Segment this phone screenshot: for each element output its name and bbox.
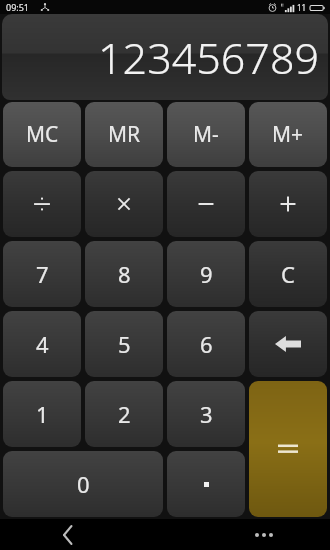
- staticText: 6: [200, 329, 213, 359]
- staticText: 8: [118, 259, 131, 289]
- staticText: MR: [108, 120, 141, 149]
- staticText: M-: [193, 120, 219, 149]
- button[interactable]: M+: [249, 102, 327, 167]
- staticText: 1: [36, 399, 49, 429]
- button[interactable]: MR: [85, 102, 163, 167]
- button[interactable]: Minus: [167, 171, 245, 237]
- button[interactable]: 7: [3, 241, 81, 307]
- button[interactable]: Decimal point: [167, 451, 245, 517]
- staticText: 11: [297, 2, 307, 13]
- button[interactable]: 3: [167, 381, 245, 447]
- button[interactable]: Equals: [249, 381, 327, 517]
- button[interactable]: Back: [48, 519, 88, 550]
- staticText: 123456789: [98, 28, 319, 87]
- button[interactable]: 2: [85, 381, 163, 447]
- staticText: 5: [118, 329, 131, 359]
- button[interactable]: Multiply: [85, 171, 163, 237]
- button[interactable]: 6: [167, 311, 245, 377]
- button[interactable]: 8: [85, 241, 163, 307]
- button[interactable]: Divide: [3, 171, 81, 237]
- staticText: 09:51: [6, 1, 30, 13]
- staticText: 0: [77, 469, 90, 499]
- button[interactable]: 5: [85, 311, 163, 377]
- staticText: 2: [118, 399, 131, 429]
- button[interactable]: Backspace: [249, 311, 327, 377]
- button[interactable]: 0: [3, 451, 163, 517]
- button[interactable]: MC: [3, 102, 81, 167]
- staticText: 7: [36, 259, 49, 289]
- staticText: M+: [272, 120, 304, 149]
- button[interactable]: Plus: [249, 171, 327, 237]
- button[interactable]: 4: [3, 311, 81, 377]
- button[interactable]: M-: [167, 102, 245, 167]
- button[interactable]: C: [249, 241, 327, 307]
- staticText: C: [281, 259, 295, 289]
- button[interactable]: More options: [244, 519, 284, 550]
- button[interactable]: 1: [3, 381, 81, 447]
- staticText: 3: [200, 399, 213, 429]
- staticText: 9: [200, 259, 213, 289]
- staticText: MC: [26, 120, 59, 149]
- button[interactable]: 9: [167, 241, 245, 307]
- staticText: 4: [36, 329, 49, 359]
